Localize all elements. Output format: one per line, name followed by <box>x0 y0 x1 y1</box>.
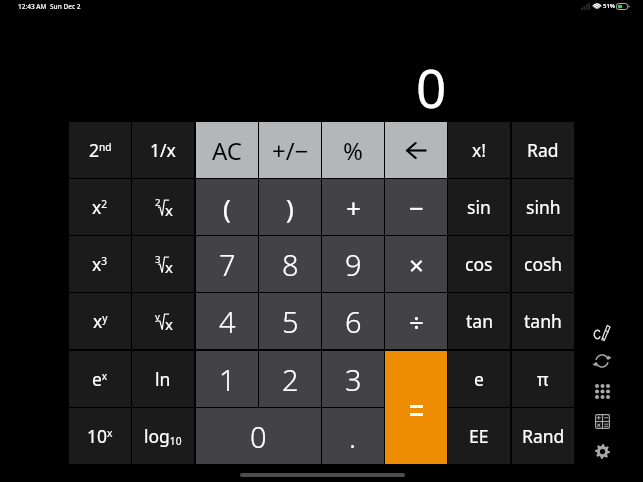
button[interactable]: tan <box>448 293 510 349</box>
button[interactable]: ÷ <box>385 293 447 349</box>
button[interactable]: Settings <box>587 436 617 466</box>
button[interactable]: 0 <box>196 408 321 464</box>
button[interactable]: AC <box>196 122 258 178</box>
button[interactable]: ( <box>196 179 258 235</box>
staticText: 3 <box>155 253 161 266</box>
staticText: xy <box>93 309 108 333</box>
staticText: 12:43 AM <box>18 2 47 11</box>
staticText: Sun Dec 2 <box>50 2 81 11</box>
staticText: x <box>165 314 173 334</box>
staticText: − <box>409 190 424 225</box>
button[interactable]: 2 <box>259 351 321 407</box>
staticText: 3 <box>345 360 362 399</box>
button[interactable]: Calculator <box>587 406 617 436</box>
button[interactable] <box>385 122 447 178</box>
button[interactable]: xy <box>69 293 131 349</box>
button[interactable]: π <box>512 351 574 407</box>
staticText: cosh <box>524 252 563 276</box>
button[interactable]: 4 <box>196 293 258 349</box>
button[interactable]: log10 <box>132 408 194 464</box>
button[interactable]: ) <box>259 179 321 235</box>
staticText: 1/x <box>150 138 176 162</box>
button[interactable]: x3 <box>69 236 131 292</box>
button[interactable]: ln <box>132 351 194 407</box>
staticText: x <box>165 257 173 277</box>
staticText: x3 <box>92 252 108 276</box>
button[interactable]: +/− <box>259 122 321 178</box>
button[interactable]: Convert <box>587 346 617 376</box>
staticText: 4 <box>219 302 236 341</box>
button[interactable]: ex <box>69 351 131 407</box>
button[interactable]: 9 <box>322 236 384 292</box>
button[interactable]: 10x <box>69 408 131 464</box>
button[interactable]: y <box>132 293 194 349</box>
button[interactable]: x! <box>448 122 510 178</box>
staticText: 2nd <box>89 138 112 162</box>
staticText: Rad <box>527 138 559 162</box>
button[interactable]: − <box>385 179 447 235</box>
staticText: +/− <box>272 134 309 167</box>
staticText: 0 <box>416 51 447 123</box>
staticText: 5 <box>282 302 299 341</box>
staticText: 2 <box>282 360 299 399</box>
staticText: x2 <box>92 195 108 219</box>
button[interactable] <box>385 351 447 464</box>
button[interactable]: cos <box>448 236 510 292</box>
staticText: % <box>343 134 363 167</box>
button[interactable]: % <box>322 122 384 178</box>
staticText: Rand <box>522 424 565 448</box>
staticText: 1 <box>219 360 236 399</box>
staticText: e <box>474 367 484 391</box>
button[interactable]: 2nd <box>69 122 131 178</box>
button[interactable]: × <box>385 236 447 292</box>
staticText: tanh <box>524 309 562 333</box>
button[interactable]: e <box>448 351 510 407</box>
button[interactable]: Rad <box>512 122 574 178</box>
button[interactable]: 1/x <box>132 122 194 178</box>
button[interactable]: tanh <box>512 293 574 349</box>
staticText: 8 <box>282 245 299 284</box>
staticText: ÷ <box>409 304 424 339</box>
staticText: × <box>409 247 424 282</box>
button[interactable]: sinh <box>512 179 574 235</box>
button[interactable]: Keypad <box>587 376 617 406</box>
staticText: sinh <box>526 195 561 219</box>
staticText: sin <box>467 195 491 219</box>
staticText: 9 <box>345 245 362 284</box>
staticText: 2 <box>155 196 161 209</box>
button[interactable]: 8 <box>259 236 321 292</box>
button[interactable]: 6 <box>322 293 384 349</box>
button[interactable]: cosh <box>512 236 574 292</box>
staticText: x! <box>472 138 486 162</box>
button[interactable]: 2 <box>132 179 194 235</box>
button[interactable]: EE <box>448 408 510 464</box>
staticText: log10 <box>144 424 182 448</box>
staticText: . <box>349 417 357 456</box>
staticText: 0 <box>250 417 267 456</box>
staticText: ) <box>286 190 294 225</box>
staticText: y <box>155 310 160 323</box>
button[interactable]: Rand <box>512 408 574 464</box>
button[interactable]: x2 <box>69 179 131 235</box>
staticText: ( <box>223 190 231 225</box>
staticText: ex <box>92 367 108 391</box>
staticText: tan <box>466 309 493 333</box>
staticText: ln <box>155 367 171 391</box>
button[interactable]: 5 <box>259 293 321 349</box>
button[interactable]: . <box>322 408 384 464</box>
staticText: x <box>165 200 173 220</box>
staticText: EE <box>469 424 489 448</box>
staticText: AC <box>212 134 243 167</box>
staticText: π <box>537 367 549 391</box>
button[interactable]: 1 <box>196 351 258 407</box>
button[interactable]: 3 <box>132 236 194 292</box>
staticText: 10x <box>87 424 113 448</box>
button[interactable]: + <box>322 179 384 235</box>
staticText: 7 <box>219 245 236 284</box>
button[interactable]: 3 <box>322 351 384 407</box>
staticText: + <box>346 190 361 225</box>
staticText: cos <box>465 252 493 276</box>
button[interactable]: 7 <box>196 236 258 292</box>
button[interactable]: Handwriting <box>587 316 617 346</box>
button[interactable]: sin <box>448 179 510 235</box>
